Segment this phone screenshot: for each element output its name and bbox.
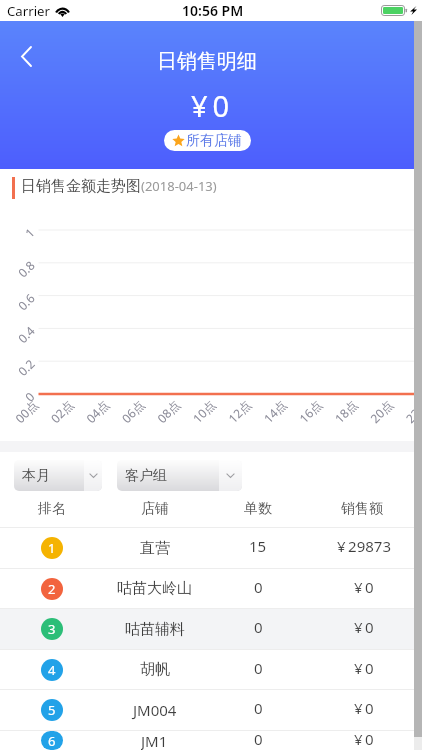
staticText: 单数 xyxy=(244,500,272,518)
staticText: 15 xyxy=(249,536,267,556)
staticText: 5 xyxy=(48,701,56,719)
staticText: 胡帆 xyxy=(140,660,170,679)
staticText: (2018-04-13) xyxy=(141,177,217,195)
button[interactable]: 2 xyxy=(0,569,414,608)
staticText: 日销售金额走势图 xyxy=(21,177,141,196)
staticText: 排名 xyxy=(38,500,66,518)
staticText: 0 xyxy=(254,729,263,748)
staticText: 销售额 xyxy=(341,500,383,518)
button[interactable]: 所有店铺 xyxy=(164,130,251,151)
staticText: 0 xyxy=(254,658,263,678)
staticText: 3 xyxy=(48,620,56,638)
staticText: 0 xyxy=(254,617,263,637)
staticText: 4 xyxy=(48,661,56,679)
staticText: ¥ 0 xyxy=(354,617,374,637)
staticText: 日销售明细 xyxy=(157,49,257,74)
staticText: 1 xyxy=(48,539,56,557)
staticText: JM1 xyxy=(141,731,168,750)
staticText: 0 xyxy=(254,698,263,718)
staticText: ¥ 0 xyxy=(354,577,374,597)
button[interactable]: 6 xyxy=(0,731,414,750)
button[interactable]: 1 xyxy=(0,528,414,568)
staticText: 10:56 PM xyxy=(182,1,244,20)
staticText: Carrier xyxy=(7,2,50,20)
staticText: 6 xyxy=(48,732,56,750)
staticText: ¥ 29873 xyxy=(337,536,391,556)
staticText: 所有店铺 xyxy=(186,132,242,150)
button[interactable]: 5 xyxy=(0,690,414,730)
staticText: 0 xyxy=(254,577,263,597)
button[interactable]: 本月 xyxy=(14,460,102,491)
staticText: 本月 xyxy=(22,467,50,485)
button[interactable]: 3 xyxy=(0,609,414,649)
button[interactable]: 客户组 xyxy=(117,460,242,491)
staticText: 客户组 xyxy=(125,467,167,485)
staticText: ¥ 0 xyxy=(354,729,374,748)
staticText: JM004 xyxy=(133,700,177,720)
staticText: ¥ 0 xyxy=(191,86,229,125)
staticText: ¥ 0 xyxy=(354,658,374,678)
staticText: 2 xyxy=(48,580,56,598)
staticText: ¥ 0 xyxy=(354,698,374,718)
button[interactable]: Back xyxy=(5,38,47,74)
staticText: 咕苗辅料 xyxy=(125,620,185,639)
staticText: 直营 xyxy=(140,539,170,558)
staticText: 店铺 xyxy=(141,500,169,518)
button[interactable]: 4 xyxy=(0,650,414,689)
staticText: 咕苗大岭山 xyxy=(117,579,192,598)
